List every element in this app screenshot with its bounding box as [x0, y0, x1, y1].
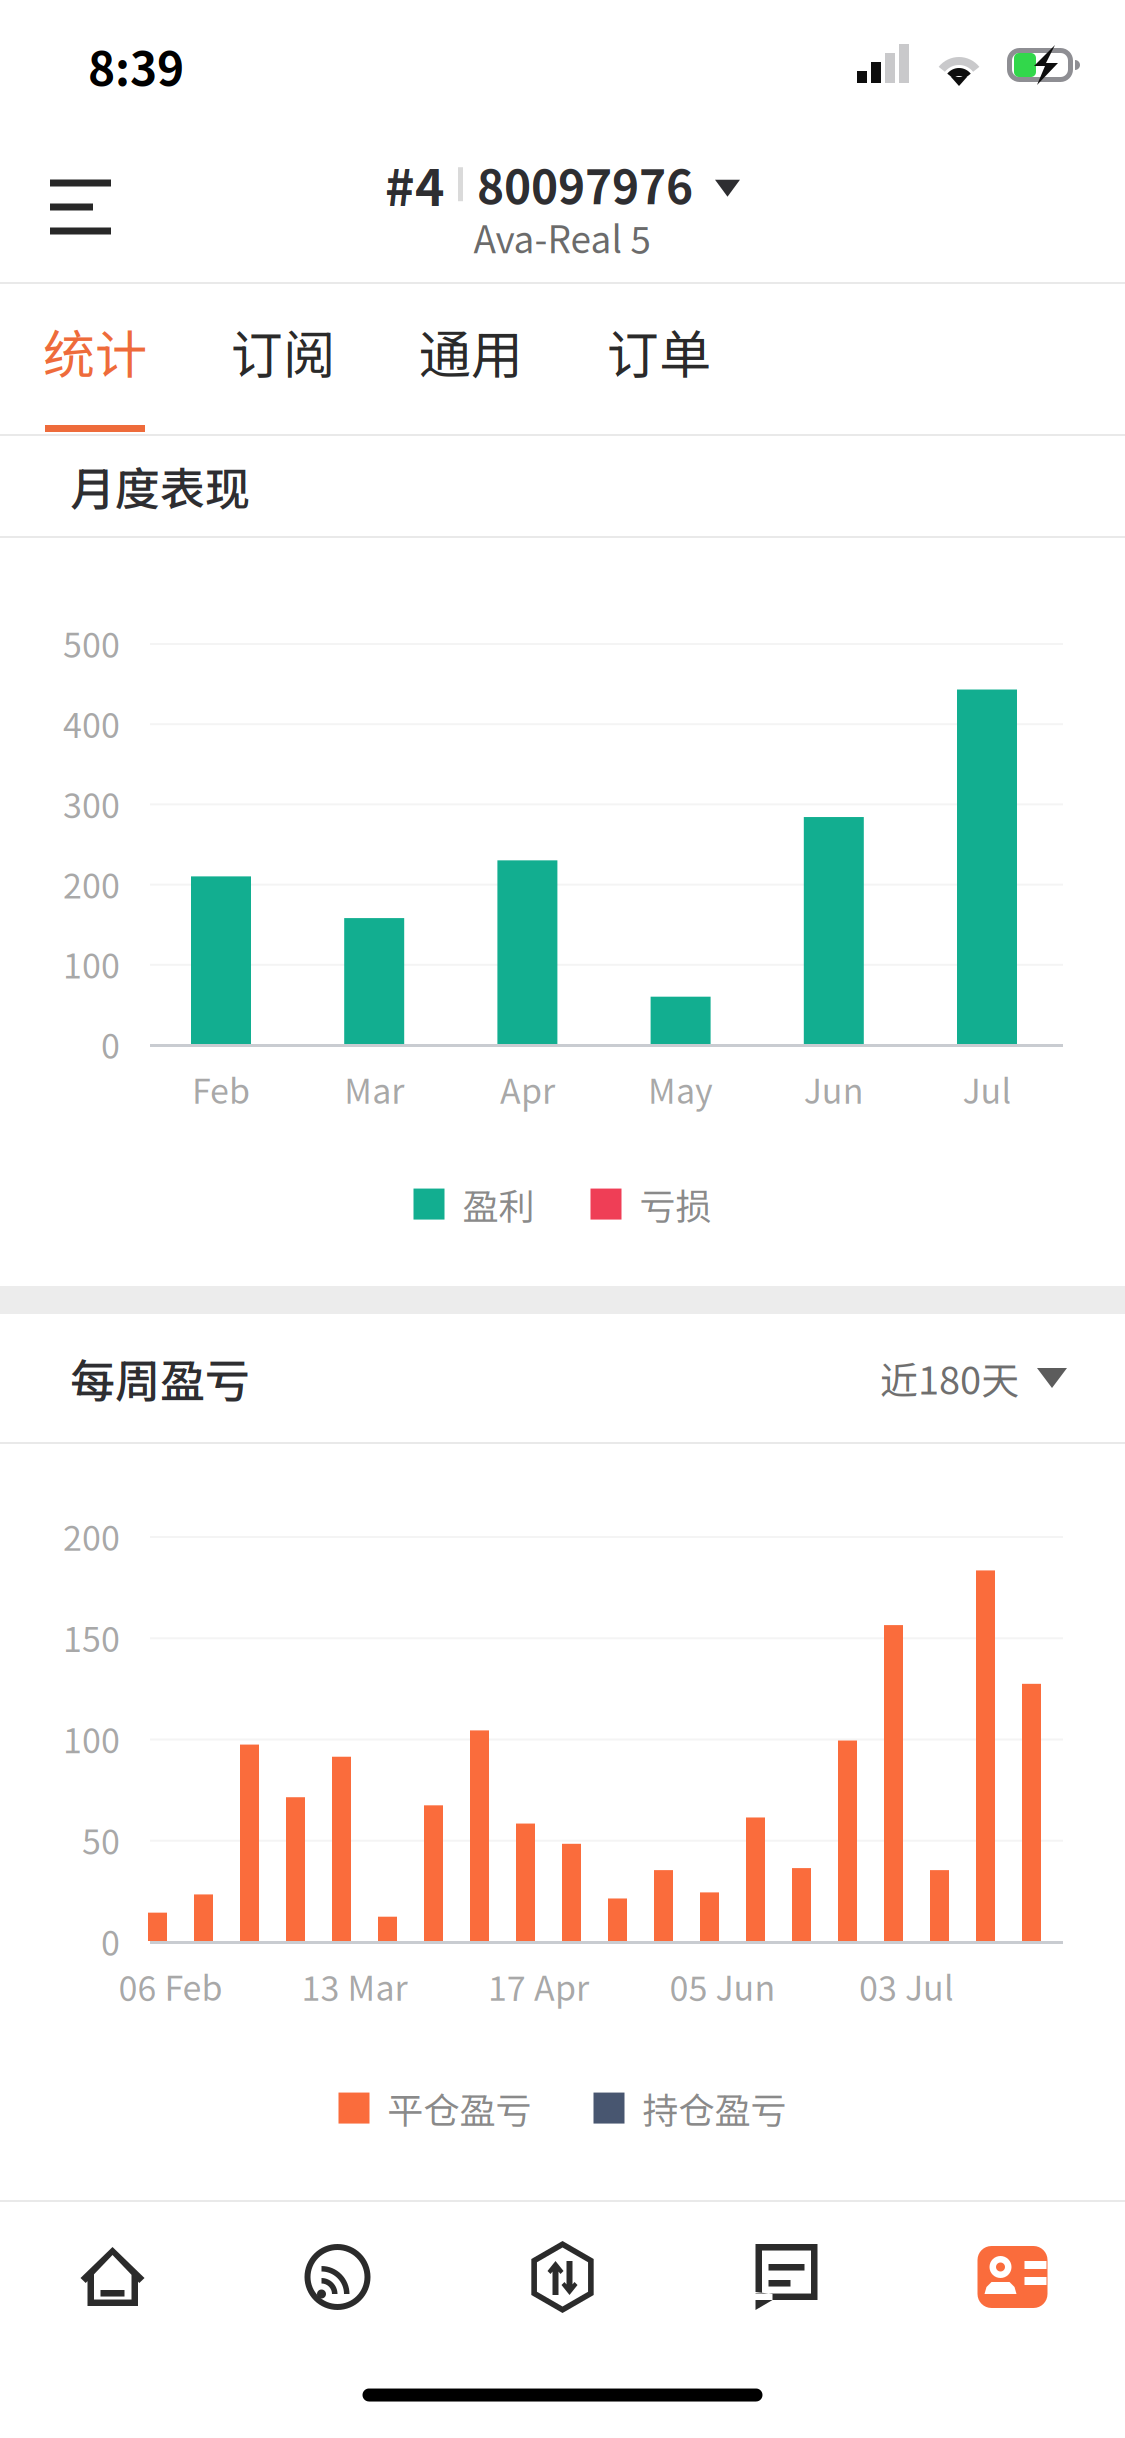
staticText: 0 — [101, 1916, 120, 1966]
staticText: 13 Mar — [301, 1961, 407, 2011]
staticText: 05 Jun — [669, 1961, 775, 2011]
staticText: 150 — [63, 1613, 120, 1662]
staticText: Apr — [500, 1064, 555, 1114]
button[interactable]: 统计 — [25, 284, 165, 434]
staticText: 盈利 — [462, 1178, 534, 1230]
staticText: 500 — [63, 618, 120, 668]
staticText: 80097976 — [477, 151, 693, 217]
staticText: 400 — [63, 699, 120, 748]
staticText: 统计 — [43, 313, 147, 389]
button[interactable]: Messages — [675, 2202, 900, 2352]
staticText: May — [648, 1064, 713, 1114]
button[interactable]: 订阅 — [213, 284, 353, 434]
staticText: 100 — [63, 1714, 120, 1763]
staticText: 03 Jul — [859, 1961, 954, 2011]
staticText: 200 — [63, 859, 120, 908]
staticText: Feb — [192, 1064, 250, 1114]
staticText: Jul — [962, 1064, 1011, 1114]
button[interactable]: Menu — [0, 153, 137, 260]
button[interactable]: Trade — [450, 2202, 675, 2352]
button[interactable]: 近180天 — [880, 1350, 1067, 1405]
staticText: 亏损 — [639, 1178, 711, 1230]
staticText: Mar — [344, 1064, 404, 1114]
staticText: 持仓盈亏 — [642, 2082, 786, 2134]
staticText: #4 — [385, 148, 445, 220]
staticText: 17 Apr — [488, 1961, 589, 2011]
staticText: 近180天 — [880, 1350, 1019, 1405]
staticText: 通用 — [419, 313, 523, 389]
staticText: Jun — [804, 1064, 864, 1114]
button[interactable]: Signals — [225, 2202, 450, 2352]
staticText: 8:39 — [88, 33, 184, 99]
staticText: 0 — [101, 1019, 120, 1069]
staticText: 订阅 — [231, 313, 335, 389]
staticText: 200 — [63, 1511, 120, 1561]
button[interactable]: Home — [0, 2202, 225, 2352]
staticText: 月度表现 — [70, 453, 250, 519]
staticText: 100 — [63, 939, 120, 988]
staticText: 每周盈亏 — [70, 1345, 250, 1411]
button[interactable]: 订单 — [589, 284, 729, 434]
staticText: 06 Feb — [118, 1961, 222, 2011]
staticText: 300 — [63, 779, 120, 828]
staticText: 50 — [82, 1815, 120, 1864]
staticText: 平仓盈亏 — [387, 2082, 531, 2134]
button[interactable]: 通用 — [401, 284, 541, 434]
button[interactable]: Account — [900, 2202, 1125, 2352]
staticText: 订单 — [607, 313, 711, 389]
staticText: Ava-Real 5 — [473, 210, 651, 264]
